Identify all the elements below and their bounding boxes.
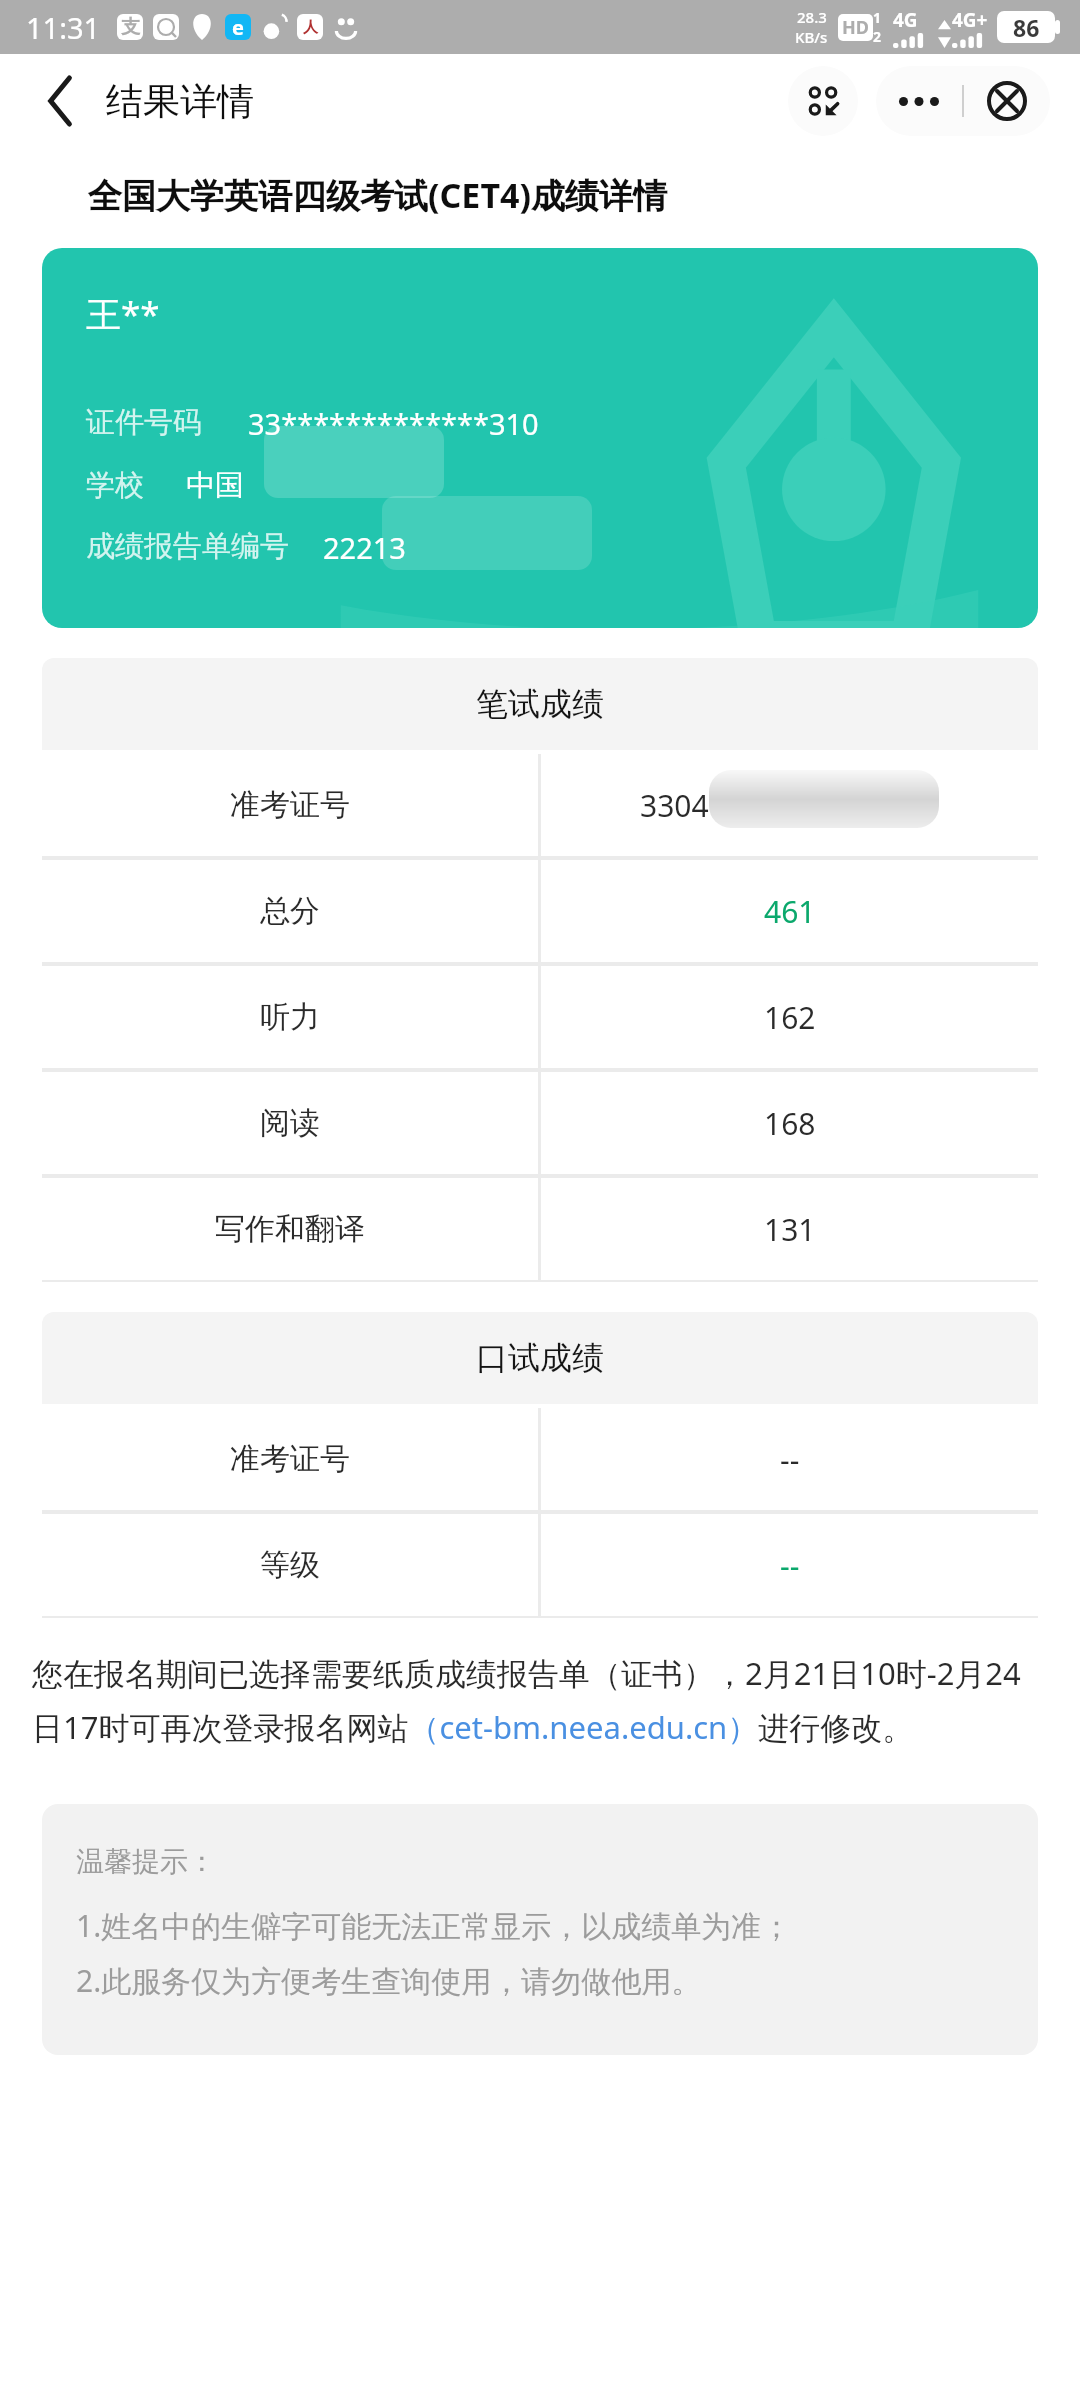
staticText: 等级 xyxy=(260,1546,320,1584)
staticText: 总分 xyxy=(260,892,320,930)
button[interactable]: More options xyxy=(876,66,962,136)
staticText: 131 xyxy=(764,1209,816,1250)
staticText: 阅读 xyxy=(260,1104,320,1142)
staticText: 4G xyxy=(893,7,918,33)
staticText: 2 xyxy=(873,27,882,46)
staticText: e xyxy=(232,14,244,40)
staticText: 11:31 xyxy=(26,8,101,47)
button[interactable]: Close xyxy=(964,66,1050,136)
staticText: 33*************310 xyxy=(248,404,539,443)
staticText: 写作和翻译 xyxy=(215,1210,365,1248)
staticText: 准考证号 xyxy=(230,1440,350,1478)
staticText: 全国大学英语四级考试(CET4)成绩详情 xyxy=(88,172,667,218)
staticText: -- xyxy=(780,1439,800,1480)
staticText: 笔试成绩 xyxy=(476,684,604,724)
button[interactable]: Mini program menu xyxy=(788,66,858,136)
staticText: 86 xyxy=(1013,12,1040,43)
staticText: 口试成绩 xyxy=(476,1338,604,1378)
staticText: 支 xyxy=(121,15,140,39)
staticText: 人 xyxy=(303,18,318,37)
staticText: 听力 xyxy=(260,998,320,1036)
staticText: 证件号码 xyxy=(86,404,202,441)
staticText: 461 xyxy=(764,891,816,932)
staticText: 学校 xyxy=(86,467,144,504)
staticText: 1.姓名中的生僻字可能无法正常显示，以成绩单为准； xyxy=(76,1905,792,1946)
staticText: 3304 xyxy=(640,785,709,826)
staticText: 1 xyxy=(873,8,882,27)
staticText: -- xyxy=(780,1545,800,1586)
staticText: HD xyxy=(842,15,869,40)
staticText: 成绩报告单编号 xyxy=(86,528,289,565)
staticText: 22213 xyxy=(323,528,406,567)
staticText: 结果详情 xyxy=(106,78,254,125)
staticText: 温馨提示： xyxy=(76,1844,216,1879)
staticText: 28.3 xyxy=(797,7,827,27)
staticText: 中国 xyxy=(186,467,244,504)
staticText: 168 xyxy=(764,1103,816,1144)
staticText: 162 xyxy=(764,997,816,1038)
button[interactable]: Back xyxy=(30,70,92,132)
staticText: 王** xyxy=(86,290,160,338)
staticText: 4G+ xyxy=(952,7,988,33)
staticText: 准考证号 xyxy=(230,786,350,824)
staticText: KB/s xyxy=(795,27,828,47)
staticText: 您在报名期间已选择需要纸质成绩报告单（证书），2月21日10时-2月24日17时… xyxy=(32,1652,1048,1748)
staticText: 2.此服务仅为方便考生查询使用，请勿做他用。 xyxy=(76,1960,702,2001)
